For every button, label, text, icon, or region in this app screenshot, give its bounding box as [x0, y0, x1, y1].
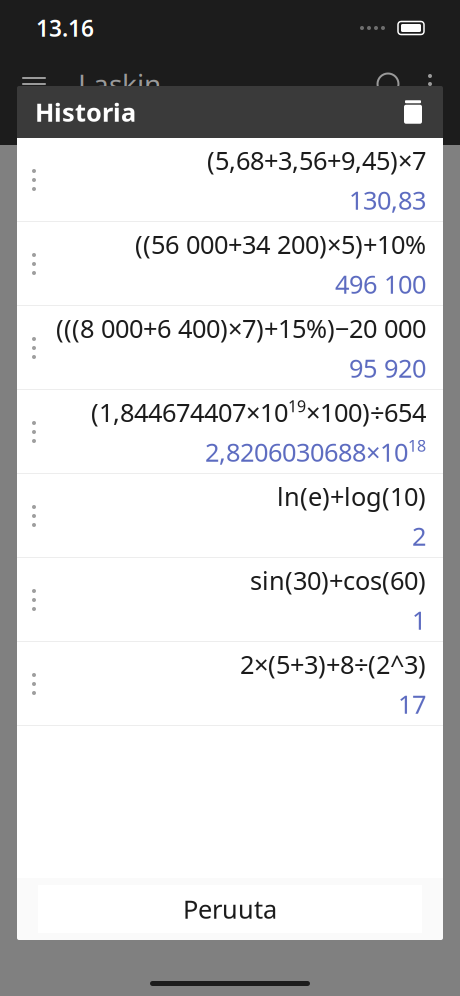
- button[interactable]: History: [366, 62, 410, 106]
- staticText: (5,68+3,56+9,45)×7: [207, 143, 426, 177]
- staticText: 2: [412, 519, 426, 553]
- staticText: (((8 000+6 400)×7)+15%)−20 000: [56, 311, 426, 345]
- staticText: Historia: [35, 95, 136, 129]
- staticText: 130,83: [349, 183, 426, 217]
- button[interactable]: ln(e)+log(10): [17, 474, 443, 558]
- staticText: 2,8206030688×10: [205, 435, 408, 469]
- button[interactable]: Peruuta: [38, 885, 422, 933]
- staticText: ((56 000+34 200)×5)+10%: [135, 227, 426, 261]
- staticText: ×100)÷654: [306, 395, 426, 429]
- button[interactable]: (1,844674407×10: [17, 390, 443, 474]
- staticText: 19: [288, 395, 306, 417]
- staticText: ln(e)+log(10): [277, 479, 426, 513]
- staticText: Laskin: [78, 65, 161, 103]
- button[interactable]: More options: [410, 62, 450, 106]
- button[interactable]: sin(30)+cos(60): [17, 558, 443, 642]
- staticText: 18: [408, 435, 426, 456]
- staticText: 2×(5+3)+8÷(2^3): [240, 647, 426, 681]
- button[interactable]: ((56 000+34 200)×5)+10%: [17, 222, 443, 306]
- staticText: 1: [412, 603, 426, 637]
- button[interactable]: Clear history: [391, 90, 435, 134]
- staticText: 95 920: [349, 351, 426, 385]
- staticText: 17: [398, 687, 426, 721]
- button[interactable]: (5,68+3,56+9,45)×7: [17, 138, 443, 222]
- button[interactable]: 2×(5+3)+8÷(2^3): [17, 642, 443, 726]
- staticText: Peruuta: [183, 892, 277, 926]
- staticText: (1,844674407×10: [91, 395, 288, 429]
- button[interactable]: Menu: [10, 60, 58, 108]
- staticText: sin(30)+cos(60): [250, 563, 426, 597]
- staticText: 13.16: [36, 13, 94, 43]
- staticText: 496 100: [335, 267, 426, 301]
- button[interactable]: (((8 000+6 400)×7)+15%)−20 000: [17, 306, 443, 390]
